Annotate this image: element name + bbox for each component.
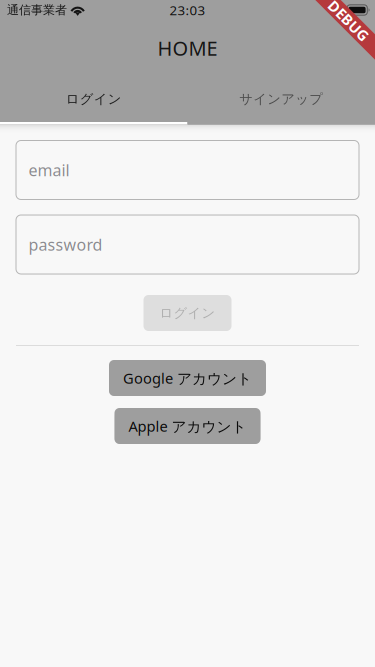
button[interactable]: ログイン [0,76,187,124]
staticText: 通信事業者 [7,3,67,17]
staticText: password [28,234,102,255]
staticText: Apple アカウント [128,416,246,436]
staticText: ログイン [159,305,215,321]
staticText: DEBUG [328,0,375,19]
staticText: サインアップ [239,91,323,107]
staticText: Google アカウント [123,368,252,388]
button[interactable]: サインアップ [187,76,375,124]
button[interactable]: ログイン [143,295,231,331]
button[interactable]: Google アカウント [109,360,266,396]
staticText: 23:03 [169,1,205,19]
button[interactable]: Apple アカウント [114,408,260,444]
staticText: email [28,159,69,181]
staticText: HOME [157,35,217,61]
staticText: ログイン [66,91,122,107]
